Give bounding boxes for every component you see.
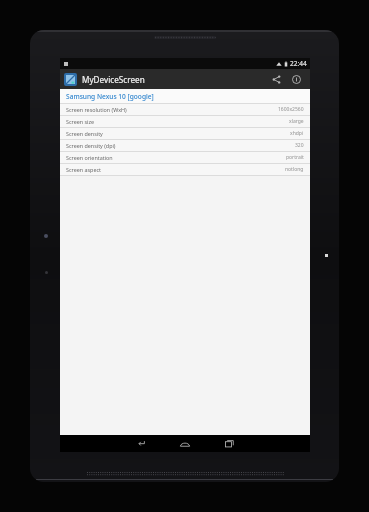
staticText: Screen density (dpi) xyxy=(66,142,116,149)
staticText: 320 xyxy=(295,142,304,149)
button[interactable]: Share xyxy=(266,69,286,89)
staticText: notlong xyxy=(285,166,304,173)
staticText: Screen aspect xyxy=(66,166,101,173)
button[interactable]: Screen orientation xyxy=(60,152,310,163)
button[interactable]: Screen density (dpi) xyxy=(60,140,310,151)
staticText: MyDeviceScreen xyxy=(82,74,145,85)
staticText: Screen size xyxy=(66,118,95,125)
button[interactable]: Screen size xyxy=(60,116,310,127)
button[interactable]: Home xyxy=(163,435,207,452)
button[interactable]: Screen aspect xyxy=(60,164,310,175)
button[interactable]: Back xyxy=(119,435,163,452)
staticText: 22:44 xyxy=(290,59,307,68)
staticText: Screen density xyxy=(66,130,103,137)
button[interactable]: Screen density xyxy=(60,128,310,139)
staticText: Screen orientation xyxy=(66,154,113,161)
staticText: Samsung Nexus 10 [google] xyxy=(66,92,154,101)
button[interactable]: About xyxy=(286,69,306,89)
staticText: 1600x2560 xyxy=(278,106,304,113)
staticText: xhdpi xyxy=(290,130,304,137)
staticText: Screen resolution (WxH) xyxy=(66,106,127,113)
button[interactable]: Screen resolution (WxH) xyxy=(60,104,310,115)
button[interactable]: Recent apps xyxy=(207,435,251,452)
staticText: xlarge xyxy=(289,118,304,125)
staticText: portrait xyxy=(286,154,304,161)
